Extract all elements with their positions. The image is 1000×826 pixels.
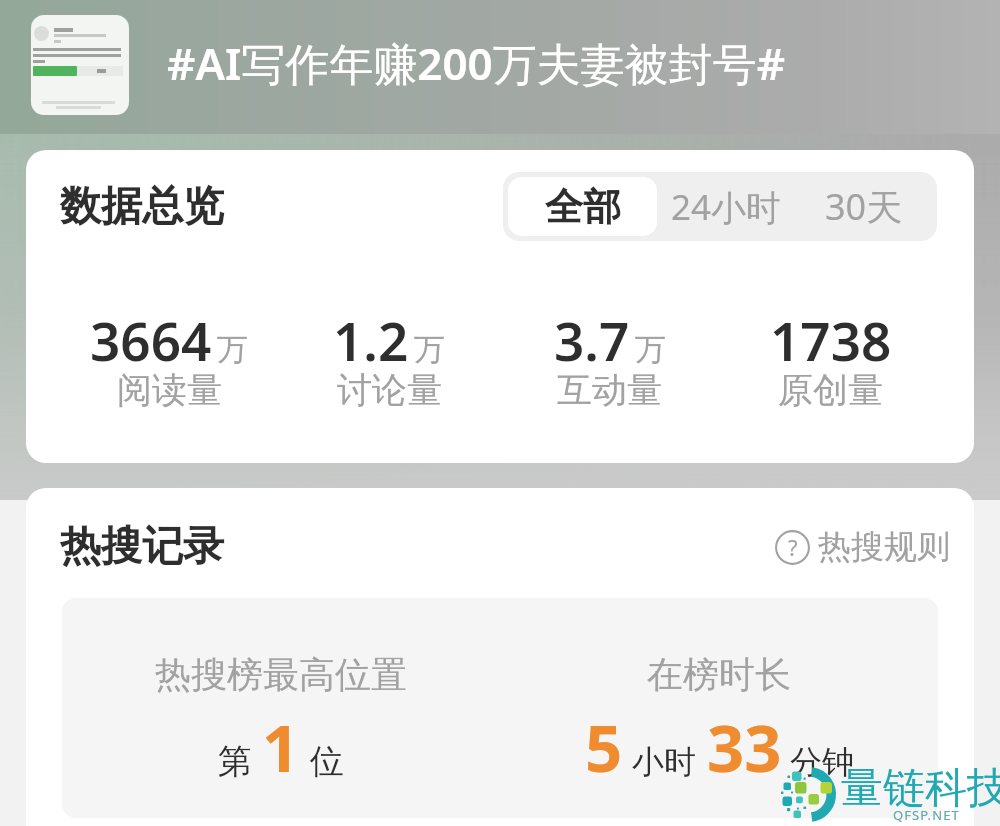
- staticText: 在榜时长: [647, 652, 791, 697]
- staticText: 万: [635, 330, 666, 369]
- button[interactable]: 话题预览图: [31, 15, 129, 115]
- button[interactable]: 24小时: [662, 172, 791, 241]
- button[interactable]: 全部: [508, 177, 657, 236]
- staticText: 互动量: [557, 368, 662, 412]
- staticText: 30天: [825, 182, 903, 231]
- staticText: ?: [788, 532, 798, 562]
- staticText: 位: [310, 740, 344, 783]
- staticText: 3664: [90, 304, 212, 376]
- staticText: 24小时: [671, 183, 782, 231]
- staticText: 热搜榜最高位置: [155, 652, 407, 697]
- staticText: 5: [585, 703, 623, 792]
- staticText: QFSP.NET: [893, 806, 960, 824]
- staticText: 分钟: [790, 742, 854, 782]
- staticText: 热搜记录: [60, 521, 224, 573]
- staticText: 量链科技: [841, 762, 1000, 815]
- staticText: 第: [218, 740, 252, 783]
- staticText: 原创量: [778, 368, 883, 412]
- staticText: #AI写作年赚200万夫妻被封号#: [167, 33, 786, 93]
- staticText: 万: [217, 330, 248, 369]
- staticText: 数据总览: [60, 181, 224, 233]
- staticText: 1738: [770, 304, 892, 376]
- staticText: 全部: [545, 183, 621, 231]
- staticText: 3.7: [554, 304, 630, 376]
- staticText: 1.2: [333, 304, 409, 376]
- button[interactable]: 热搜规则: [771, 522, 954, 572]
- staticText: 小时: [632, 742, 696, 782]
- staticText: 讨论量: [337, 368, 442, 412]
- staticText: 33: [707, 703, 782, 792]
- staticText: 万: [414, 330, 445, 369]
- staticText: 1: [262, 703, 300, 792]
- staticText: 阅读量: [117, 368, 222, 412]
- staticText: 热搜规则: [818, 526, 950, 568]
- button[interactable]: 30天: [791, 172, 937, 241]
